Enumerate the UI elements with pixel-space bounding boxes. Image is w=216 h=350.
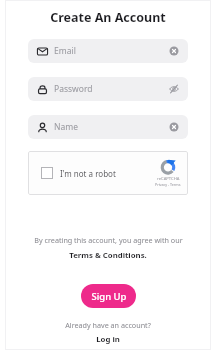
button[interactable]: Password bbox=[28, 77, 188, 101]
staticText: Privacy - Terms bbox=[155, 182, 181, 187]
staticText: Log in bbox=[96, 334, 120, 345]
button[interactable]: I'm not a robot checkbox bbox=[41, 167, 53, 179]
staticText: Terms & Conditions. bbox=[69, 250, 147, 261]
staticText: Already have an account? bbox=[65, 320, 151, 330]
button[interactable]: Terms & Conditions. bbox=[69, 250, 147, 261]
button[interactable]: Show password bbox=[165, 80, 183, 98]
staticText: Password bbox=[54, 83, 93, 95]
staticText: Sign Up bbox=[91, 290, 127, 303]
staticText: Create An Account bbox=[50, 9, 166, 26]
staticText: By creating this account, you agree with… bbox=[34, 235, 183, 245]
staticText: I'm not a robot bbox=[60, 168, 116, 179]
button[interactable]: Name bbox=[28, 115, 188, 139]
staticText: reCAPTCHA bbox=[157, 176, 180, 182]
button[interactable]: Clear bbox=[165, 42, 183, 60]
button[interactable]: Email bbox=[28, 39, 188, 63]
button[interactable]: Sign Up bbox=[81, 284, 136, 308]
button[interactable]: I'm not a robot checkbox bbox=[28, 151, 188, 195]
button[interactable]: Log in bbox=[96, 334, 120, 345]
staticText: Name bbox=[54, 121, 78, 133]
staticText: Email bbox=[54, 45, 76, 57]
button[interactable]: Clear bbox=[165, 118, 183, 136]
